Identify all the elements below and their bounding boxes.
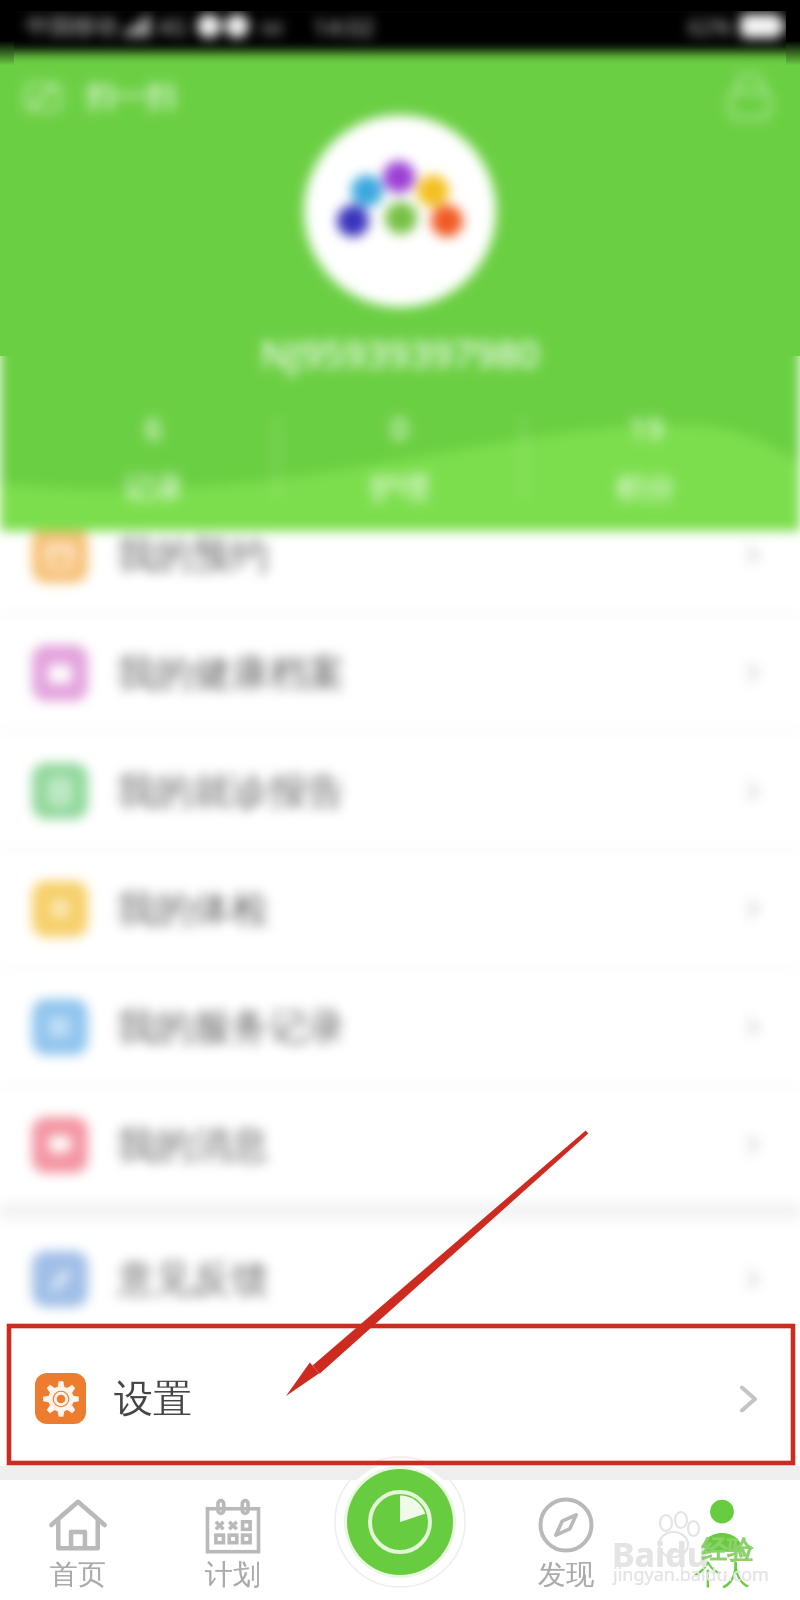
staticText: Baidu: [612, 1531, 709, 1577]
staticText: 14:02: [313, 10, 375, 43]
button[interactable]: 首页: [28, 1466, 128, 1600]
button[interactable]: 我的健康档案: [0, 614, 800, 732]
staticText: 扫一扫: [86, 78, 176, 116]
staticText: 我的消息: [117, 1121, 269, 1169]
staticText: 计划: [205, 1557, 261, 1592]
button[interactable]: 我的就诊报告: [0, 732, 800, 850]
staticText: 护理: [370, 469, 430, 507]
staticText: 经验: [701, 1534, 753, 1567]
button[interactable]: 设置: [0, 1332, 800, 1465]
staticText: 我的服务记录: [117, 1003, 345, 1051]
staticText: 个人: [694, 1557, 750, 1592]
staticText: 0: [391, 408, 409, 449]
button[interactable]: 我的消息: [0, 1086, 800, 1204]
staticText: 首页: [50, 1557, 106, 1592]
button[interactable]: 我的预约: [0, 496, 800, 614]
staticText: 中国移动: [26, 12, 118, 41]
button[interactable]: 开始计时: [347, 1469, 453, 1575]
staticText: 19: [629, 408, 664, 449]
staticText: jingyan.baidu.com: [613, 1562, 769, 1587]
staticText: 设置: [114, 1374, 192, 1423]
staticText: 我的就诊报告: [117, 767, 345, 815]
staticText: 意见反馈: [117, 1255, 269, 1303]
staticText: NJ95939397980: [261, 327, 540, 379]
staticText: 记录: [124, 469, 184, 507]
button[interactable]: 意见反馈: [0, 1220, 800, 1338]
staticText: 积分: [616, 469, 676, 507]
staticText: 我的体检: [117, 885, 269, 933]
button[interactable]: 我的服务记录: [0, 968, 800, 1086]
staticText: 4G: [158, 11, 187, 41]
button[interactable]: 扫一扫: [26, 68, 176, 126]
staticText: 我的健康档案: [117, 649, 345, 697]
staticText: 发现: [538, 1557, 594, 1592]
staticText: 6: [145, 408, 163, 449]
staticText: 62%: [688, 11, 732, 41]
button[interactable]: 我的体检: [0, 850, 800, 968]
button[interactable]: 发现: [516, 1466, 616, 1600]
staticText: 我的预约: [117, 531, 269, 579]
button[interactable]: 消息通知: [724, 71, 776, 123]
button[interactable]: 个人: [672, 1466, 772, 1600]
button[interactable]: 计划: [183, 1466, 283, 1600]
